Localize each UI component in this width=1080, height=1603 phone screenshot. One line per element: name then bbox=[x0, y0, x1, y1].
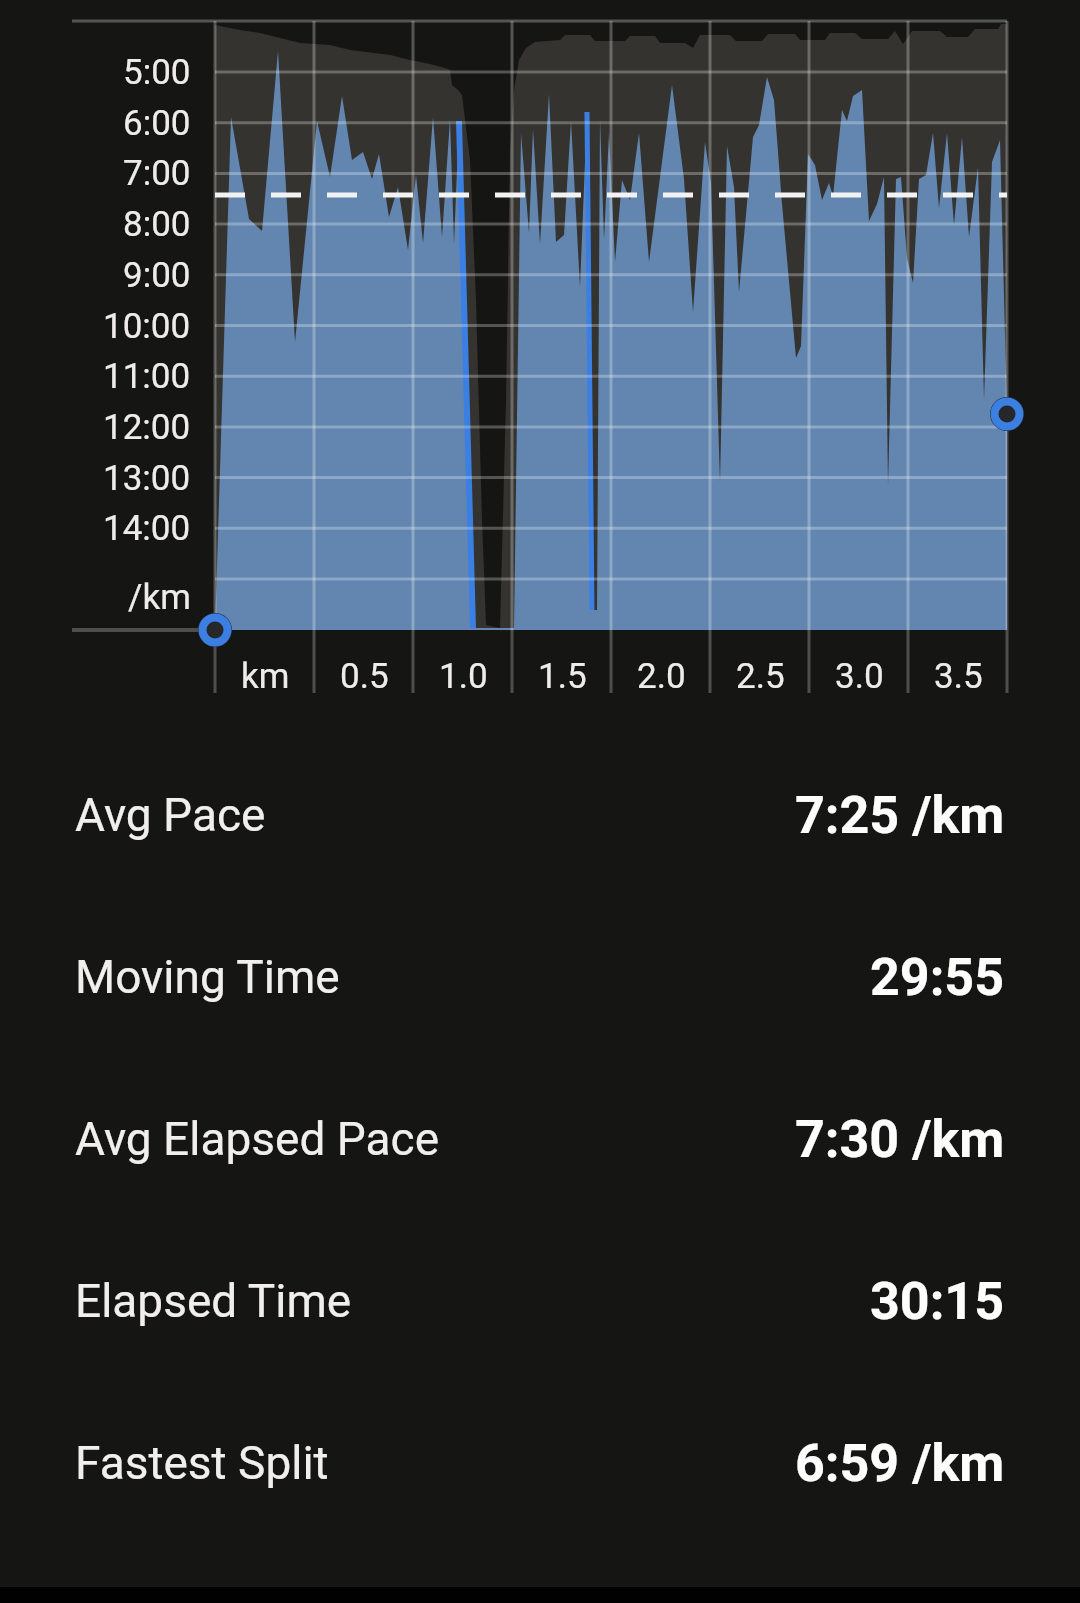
staticText: 7:00 bbox=[123, 153, 191, 194]
staticText: 6:59 /km bbox=[795, 1433, 1005, 1494]
button[interactable]: Avg Elapsed Pace bbox=[0, 1058, 1080, 1220]
staticText: 9:00 bbox=[123, 255, 191, 296]
button[interactable]: Fastest Split bbox=[0, 1382, 1080, 1544]
staticText: Fastest Split bbox=[75, 1436, 329, 1490]
staticText: km bbox=[241, 656, 290, 697]
staticText: 13:00 bbox=[103, 458, 191, 499]
staticText: 7:30 /km bbox=[795, 1109, 1005, 1170]
staticText: 12:00 bbox=[103, 407, 191, 448]
staticText: 10:00 bbox=[103, 306, 191, 347]
staticText: Avg Pace bbox=[75, 788, 266, 842]
button[interactable]: Avg Pace bbox=[0, 734, 1080, 896]
staticText: Elapsed Time bbox=[75, 1274, 352, 1328]
staticText: 7:25 /km bbox=[795, 785, 1005, 846]
staticText: 0.5 bbox=[340, 656, 389, 697]
staticText: 8:00 bbox=[123, 204, 191, 245]
staticText: 11:00 bbox=[103, 356, 191, 397]
button[interactable]: Moving Time bbox=[0, 896, 1080, 1058]
staticText: 1.5 bbox=[538, 656, 587, 697]
staticText: 29:55 bbox=[870, 947, 1005, 1008]
staticText: 5:00 bbox=[123, 52, 191, 93]
staticText: /km bbox=[128, 577, 191, 618]
staticText: 6:00 bbox=[123, 103, 191, 144]
staticText: 30:15 bbox=[870, 1271, 1005, 1332]
staticText: Avg Elapsed Pace bbox=[75, 1112, 440, 1166]
staticText: 3.5 bbox=[934, 656, 983, 697]
staticText: 14:00 bbox=[103, 508, 191, 549]
staticText: Moving Time bbox=[75, 950, 340, 1004]
staticText: 2.0 bbox=[637, 656, 686, 697]
button[interactable]: Elapsed Time bbox=[0, 1220, 1080, 1382]
staticText: 2.5 bbox=[736, 656, 785, 697]
staticText: 3.0 bbox=[835, 656, 884, 697]
staticText: 1.0 bbox=[439, 656, 488, 697]
